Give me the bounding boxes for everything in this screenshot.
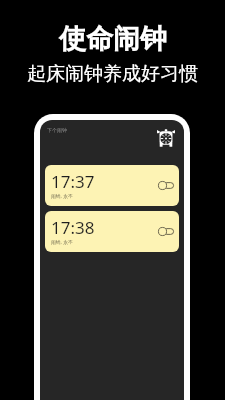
staticText: 闹铃, 永不 bbox=[51, 193, 73, 200]
button[interactable]: Alarm bbox=[157, 129, 175, 147]
button[interactable]: Toggle alarm bbox=[158, 227, 174, 236]
button[interactable]: 17:38 bbox=[45, 211, 179, 252]
staticText: 闹铃, 永不 bbox=[51, 239, 73, 246]
button[interactable]: Toggle alarm bbox=[158, 181, 174, 190]
staticText: 17:37 bbox=[51, 170, 95, 193]
staticText: 起床闹钟养成好习惯 bbox=[27, 62, 198, 86]
staticText: 下个闹钟 bbox=[47, 127, 67, 133]
staticText: 17:38 bbox=[51, 216, 95, 239]
button[interactable]: 17:37 bbox=[45, 165, 179, 206]
staticText: 使命闹钟 bbox=[59, 22, 167, 56]
